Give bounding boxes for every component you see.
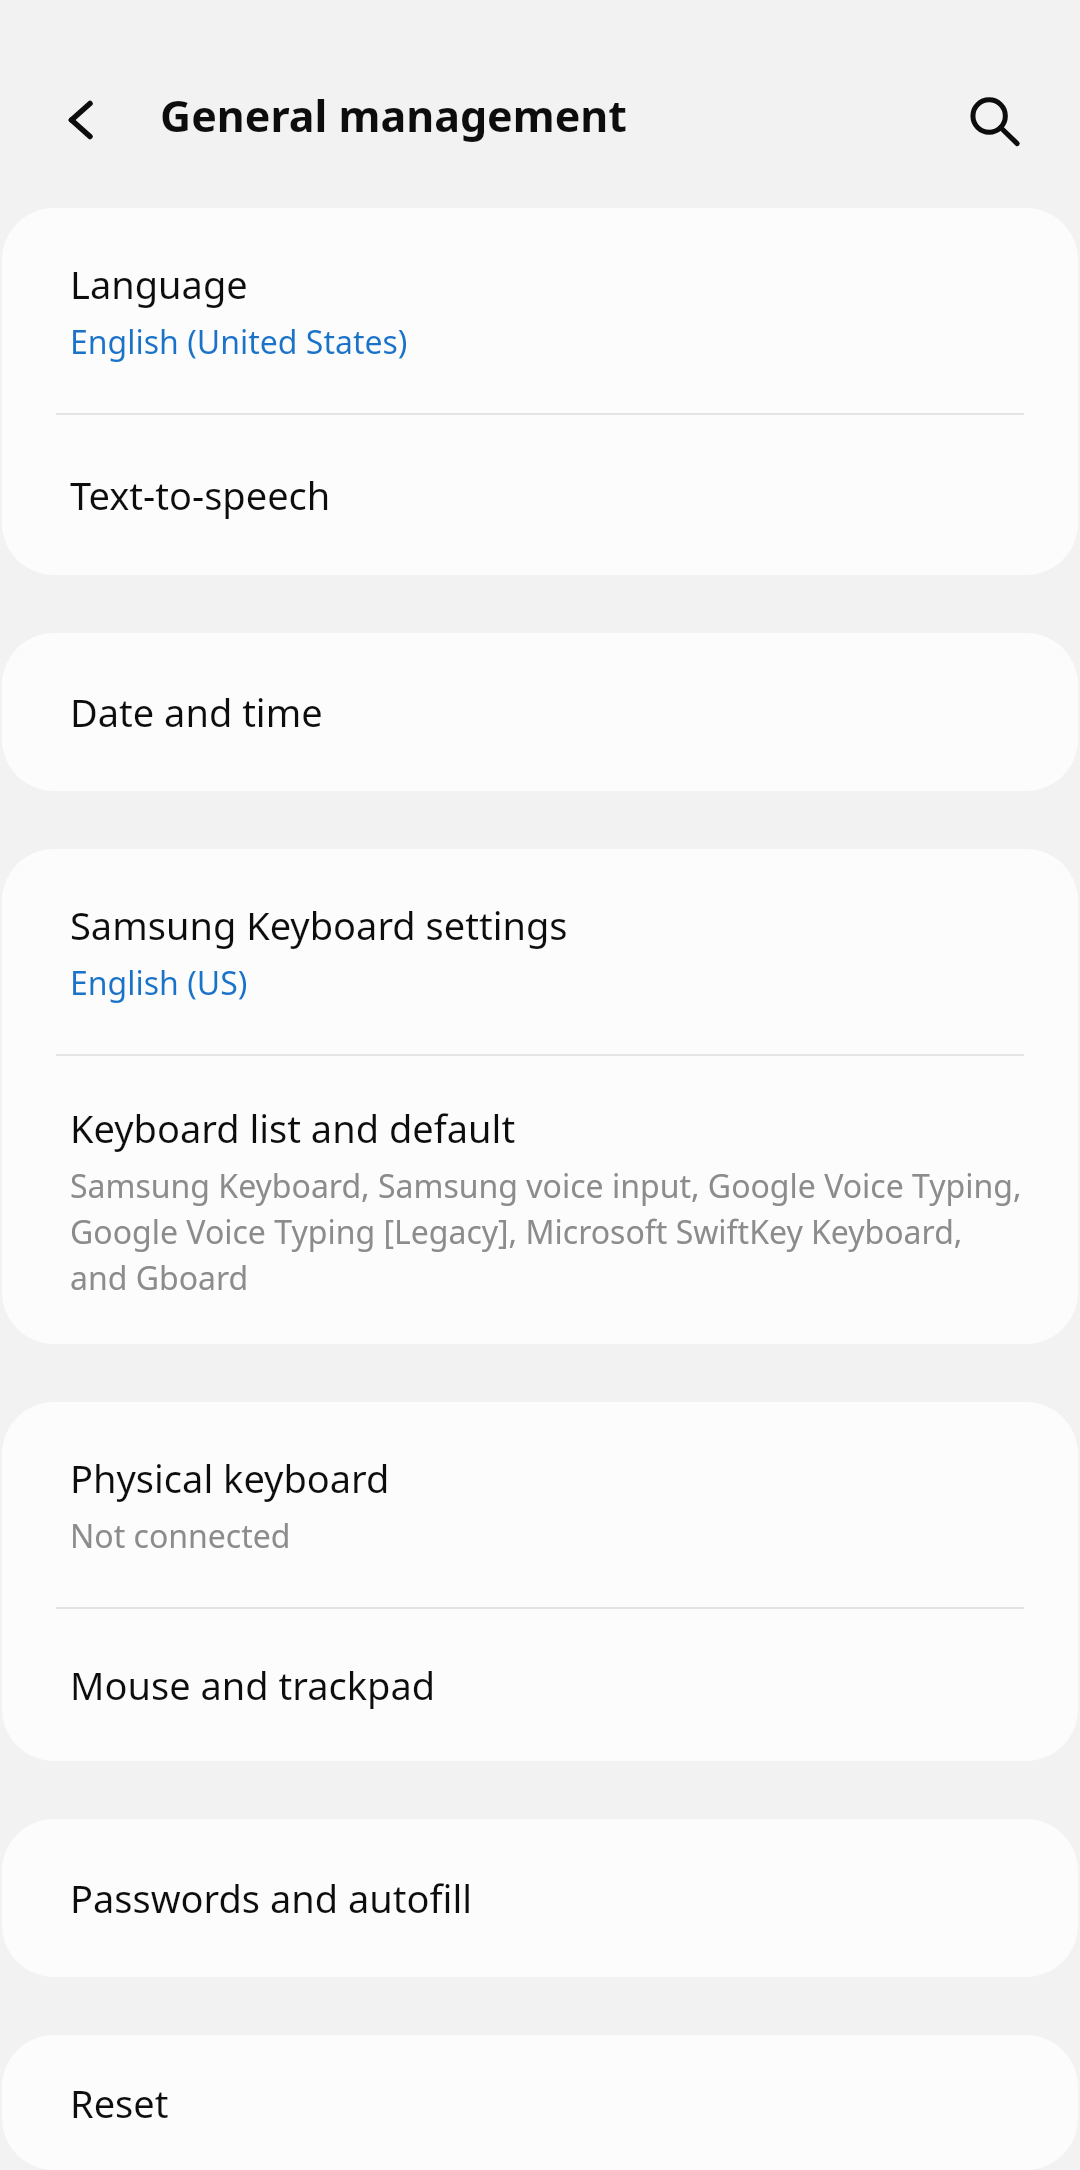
staticText: English (US) (70, 961, 248, 1005)
button[interactable]: Mouse and trackpad (2, 1609, 1078, 1761)
staticText: Passwords and autofill (70, 1872, 473, 1924)
button[interactable]: Passwords and autofill (2, 1819, 1078, 1977)
staticText: Date and time (70, 686, 323, 738)
staticText: English (United States) (70, 320, 408, 364)
button[interactable]: Date and time (2, 633, 1078, 791)
staticText: Keyboard list and default (70, 1102, 516, 1154)
button[interactable]: Reset (2, 2035, 1078, 2170)
button[interactable]: Physical keyboard (2, 1402, 1078, 1607)
button[interactable]: Text-to-speech (2, 415, 1078, 575)
button[interactable]: Keyboard list and default (2, 1056, 1078, 1344)
staticText: Reset (70, 2077, 169, 2129)
staticText: General management (160, 86, 627, 145)
staticText: Samsung Keyboard settings (70, 899, 568, 951)
staticText: Physical keyboard (70, 1452, 390, 1504)
button[interactable]: Samsung Keyboard settings (2, 849, 1078, 1054)
button[interactable]: Search (950, 78, 1038, 166)
staticText: Text-to-speech (70, 469, 331, 521)
staticText: Samsung Keyboard, Samsung voice input, G… (70, 1164, 1022, 1299)
staticText: Not connected (70, 1514, 291, 1558)
staticText: Mouse and trackpad (70, 1659, 436, 1711)
button[interactable]: Language (2, 208, 1078, 413)
staticText: Language (70, 258, 248, 310)
button[interactable]: Back (40, 78, 124, 162)
